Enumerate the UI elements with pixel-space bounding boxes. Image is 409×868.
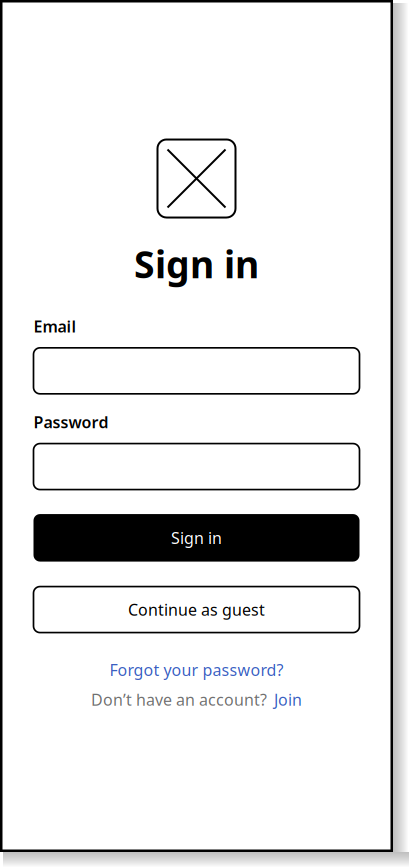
- staticText: Forgot your password?: [109, 659, 283, 680]
- button[interactable]: Forgot your password?: [109, 659, 283, 680]
- staticText: Join: [274, 689, 302, 710]
- staticText: Email: [33, 316, 76, 337]
- button[interactable]: Continue as guest: [33, 587, 359, 633]
- staticText: Don’t have an account?: [91, 689, 267, 710]
- button[interactable]: Join: [274, 689, 302, 710]
- staticText: Sign in: [171, 527, 222, 548]
- staticText: Sign in: [134, 239, 259, 289]
- staticText: Continue as guest: [128, 599, 265, 620]
- button[interactable]: Sign in: [33, 514, 359, 562]
- staticText: Password: [33, 411, 108, 432]
